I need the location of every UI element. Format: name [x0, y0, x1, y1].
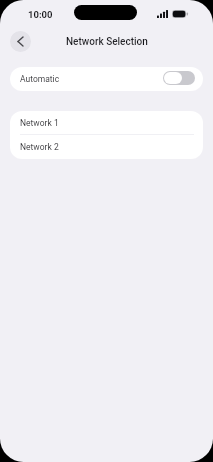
staticText: Network 2 [20, 142, 59, 152]
button[interactable]: Network 2 [10, 135, 203, 159]
staticText: 10:00 [28, 9, 53, 20]
staticText: Automatic [20, 74, 60, 84]
staticText: Network 1 [20, 118, 59, 128]
staticText: Network Selection [66, 36, 148, 48]
button[interactable]: Automatic toggle [163, 71, 195, 85]
button[interactable]: Network 1 [10, 111, 203, 134]
button[interactable]: Automatic [10, 67, 203, 91]
button[interactable]: Back [10, 31, 31, 52]
